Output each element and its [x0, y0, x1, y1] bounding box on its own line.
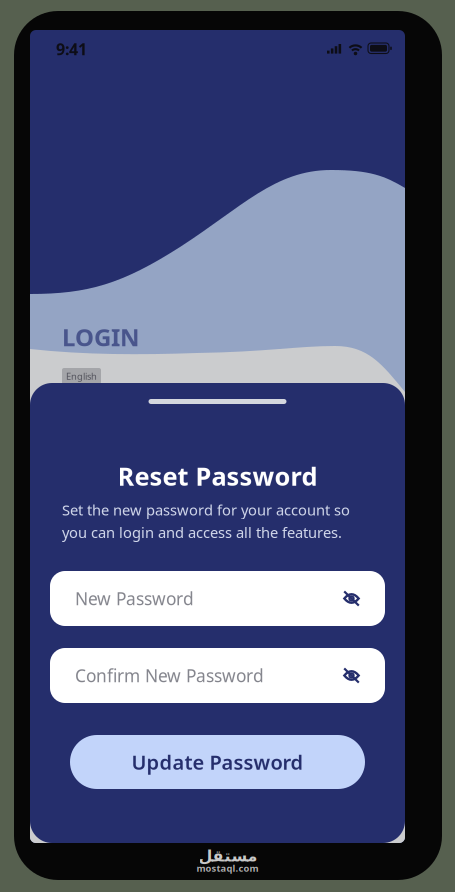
button[interactable]: Confirm New Password: [50, 648, 385, 703]
staticText: LOGIN: [62, 321, 140, 353]
staticText: مستقل: [198, 847, 257, 865]
staticText: 9:41: [56, 38, 87, 60]
staticText: Reset Password: [117, 459, 317, 493]
staticText: Set the new password for your account so: [62, 500, 350, 519]
staticText: you can login and access all the feature…: [62, 522, 342, 542]
staticText: English: [66, 370, 97, 382]
staticText: mostaql.com: [196, 862, 258, 874]
button[interactable]: Update Password: [70, 735, 365, 789]
staticText: New Password: [75, 587, 194, 610]
staticText: Confirm New Password: [75, 664, 264, 687]
staticText: Update Password: [131, 749, 303, 775]
button[interactable]: New Password: [50, 571, 385, 626]
